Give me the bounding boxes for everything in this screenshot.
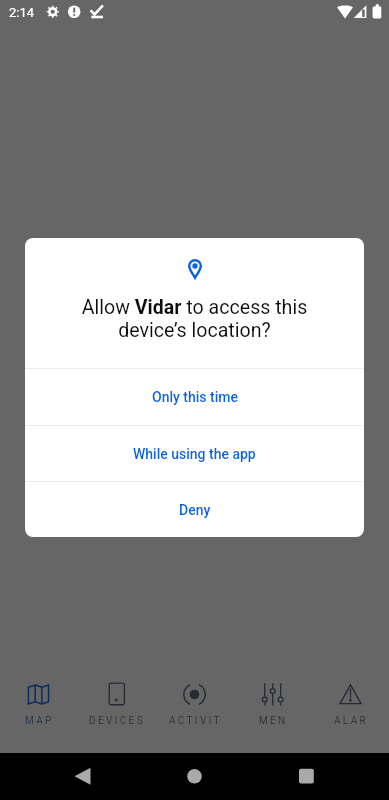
staticText: MAP [25, 715, 54, 727]
staticText: Deny [179, 502, 211, 518]
button[interactable]: Only this time [25, 369, 364, 425]
button[interactable]: ACTIVIT [155, 676, 233, 753]
button[interactable]: ALAR [311, 676, 389, 753]
staticText: MEN [259, 715, 288, 727]
button[interactable]: MAP [0, 676, 77, 753]
staticText: Allow Vidar to access this device’s loca… [49, 296, 340, 342]
button[interactable]: Deny [25, 482, 364, 537]
staticText: ACTIVIT [169, 715, 222, 727]
staticText: DEVICES [89, 715, 145, 727]
staticText: 2:14 [9, 5, 35, 20]
button[interactable]: While using the app [25, 426, 364, 481]
button[interactable]: MEN [233, 676, 311, 753]
button[interactable]: DEVICES [77, 676, 155, 753]
staticText: ALAR [334, 715, 369, 727]
staticText: While using the app [133, 446, 256, 462]
staticText: Only this time [152, 389, 238, 405]
